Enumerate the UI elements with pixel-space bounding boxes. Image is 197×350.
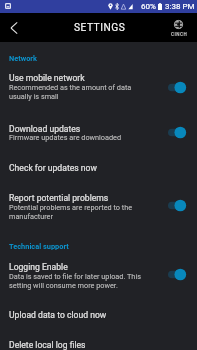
staticText: Report potential problems [9,193,109,203]
staticText: setting will consume more power. [9,281,118,290]
button[interactable]: Network [9,54,37,63]
staticText: Logging Enable [9,262,68,272]
staticText: manufacturer [9,212,53,221]
staticText: Check for updates now [9,163,97,173]
button[interactable]: Download updates [0,112,197,146]
button[interactable]: Cinch [170,13,197,42]
button[interactable]: Report potential problems [0,184,197,224]
button[interactable]: Upload data to cloud now [0,300,197,329]
staticText: 3:38 PM [165,2,195,11]
button[interactable]: Logging Enable [0,255,197,293]
staticText: usually is small [9,92,59,101]
staticText: Use mobile network [9,73,85,83]
staticText: Recommended as the amount of data [9,83,132,92]
button[interactable]: Toggle [168,81,188,94]
button[interactable]: Delete local log files [0,330,197,350]
staticText: 60% [141,2,156,11]
staticText: CINCH [171,32,188,37]
staticText: Download updates [9,124,81,134]
staticText: Potential problems are reported to the [9,203,133,212]
button[interactable]: Use mobile network [0,66,197,104]
button[interactable]: Technical support [9,242,69,251]
button[interactable]: Toggle [168,268,188,281]
staticText: Data is saved to file for later upload. … [9,272,141,281]
button[interactable]: Toggle [168,126,188,139]
staticText: Firmware updates are downloaded [9,133,122,142]
staticText: SETTINGS [74,22,126,34]
button[interactable]: Toggle [168,199,188,212]
button[interactable]: Back [0,13,26,42]
button[interactable]: Check for updates now [0,150,197,178]
staticText: Upload data to cloud now [9,310,107,320]
staticText: Delete local log files [9,340,86,350]
